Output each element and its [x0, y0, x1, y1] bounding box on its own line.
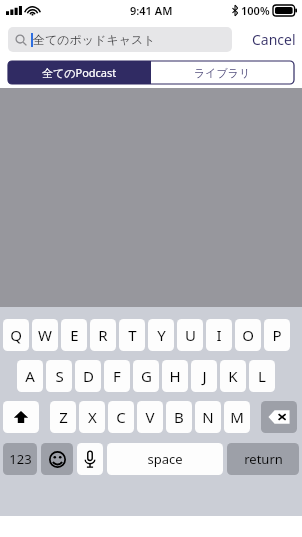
staticText: S — [55, 366, 64, 386]
staticText: T — [128, 325, 137, 345]
button[interactable]: T — [119, 319, 145, 351]
button[interactable]: ライブラリ — [151, 61, 294, 84]
staticText: C — [116, 407, 126, 427]
button[interactable]: K — [220, 360, 246, 392]
staticText: Z — [59, 407, 68, 427]
button[interactable]: A — [17, 360, 43, 392]
button[interactable]: Cancel — [252, 30, 296, 49]
button[interactable]: G — [133, 360, 159, 392]
staticText: 123 — [9, 450, 32, 468]
button[interactable]: R — [90, 319, 116, 351]
staticText: K — [228, 366, 238, 386]
button[interactable]: P — [264, 319, 290, 351]
staticText: B — [174, 407, 184, 427]
staticText: 9:41 AM — [130, 3, 173, 18]
staticText: R — [98, 325, 108, 345]
button[interactable]: I — [206, 319, 232, 351]
staticText: V — [145, 407, 155, 427]
button[interactable]: F — [104, 360, 130, 392]
button[interactable]: O — [235, 319, 261, 351]
button[interactable]: Y — [148, 319, 174, 351]
button[interactable]: 123 — [3, 443, 37, 475]
button[interactable]: Z — [50, 401, 76, 433]
staticText: 全てのポッドキャスト — [33, 32, 156, 47]
button[interactable]: Q — [3, 319, 29, 351]
staticText: N — [202, 407, 214, 427]
button[interactable]: Shift — [3, 401, 39, 433]
staticText: 100% — [241, 3, 270, 18]
staticText: E — [70, 325, 79, 345]
staticText: O — [242, 325, 254, 345]
staticText: A — [25, 366, 35, 386]
staticText: H — [169, 366, 181, 386]
staticText: D — [83, 366, 94, 386]
button[interactable]: C — [108, 401, 134, 433]
button[interactable]: X — [79, 401, 105, 433]
button[interactable]: J — [191, 360, 217, 392]
button[interactable]: Emoji — [41, 443, 73, 475]
staticText: I — [216, 325, 222, 345]
staticText: L — [258, 366, 266, 386]
staticText: 全てのPodcast — [42, 65, 117, 80]
button[interactable]: V — [137, 401, 163, 433]
staticText: return — [244, 450, 283, 468]
button[interactable]: Backspace — [261, 401, 297, 433]
staticText: J — [202, 366, 207, 386]
button[interactable]: E — [61, 319, 87, 351]
staticText: space — [147, 450, 183, 468]
button[interactable]: 全てのポッドキャスト — [8, 27, 232, 52]
button[interactable]: M — [224, 401, 250, 433]
button[interactable]: W — [32, 319, 58, 351]
staticText: G — [141, 366, 152, 386]
button[interactable]: H — [162, 360, 188, 392]
staticText: W — [38, 325, 52, 345]
button[interactable]: space — [107, 443, 223, 475]
staticText: Q — [10, 325, 22, 345]
staticText: P — [272, 325, 282, 345]
button[interactable]: D — [75, 360, 101, 392]
staticText: M — [230, 407, 244, 427]
staticText: Cancel — [252, 30, 296, 49]
button[interactable]: B — [166, 401, 192, 433]
staticText: U — [185, 325, 196, 345]
button[interactable]: U — [177, 319, 203, 351]
staticText: ライブラリ — [194, 66, 251, 80]
button[interactable]: L — [249, 360, 275, 392]
staticText: F — [113, 366, 121, 386]
button[interactable]: 全てのPodcast — [8, 61, 151, 84]
button[interactable]: N — [195, 401, 221, 433]
button[interactable]: S — [46, 360, 72, 392]
staticText: X — [88, 407, 97, 427]
button[interactable]: Dictation — [77, 443, 103, 475]
staticText: Y — [157, 325, 166, 345]
button[interactable]: return — [227, 443, 299, 475]
